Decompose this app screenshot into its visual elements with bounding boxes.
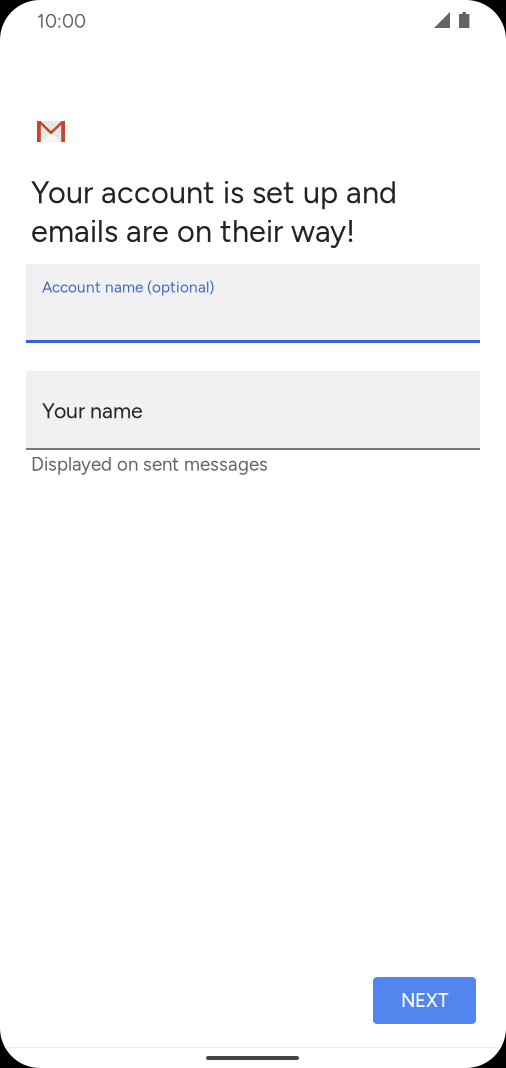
button[interactable]: NEXT [373,977,476,1024]
staticText: 10:00 [37,10,86,32]
staticText: Displayed on sent messages [31,453,268,475]
staticText: NEXT [401,989,448,1012]
button[interactable]: Account name (optional) [26,264,480,343]
staticText: Your account is set up and emails are on… [31,174,397,250]
staticText: Your name [42,398,143,424]
button[interactable]: Your name [26,371,480,450]
staticText: Account name (optional) [42,278,214,296]
